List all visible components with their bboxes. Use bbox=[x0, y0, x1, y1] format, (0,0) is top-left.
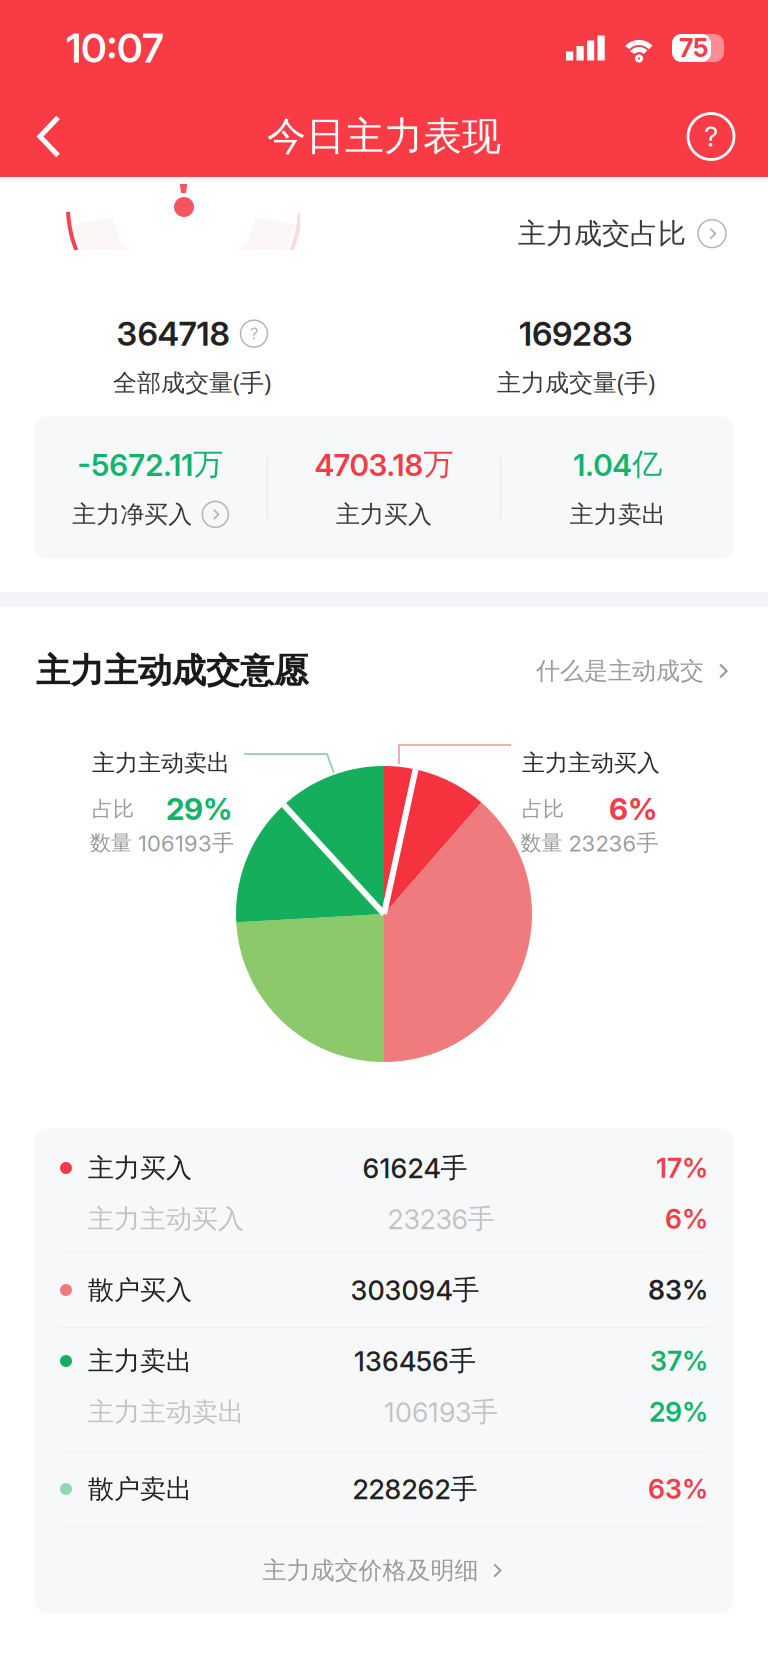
button[interactable]: 什么是主动成交 bbox=[536, 656, 732, 686]
staticText: 主力成交占比 bbox=[518, 216, 686, 251]
staticText: 全部成交量(手) bbox=[113, 366, 271, 398]
staticText: 37% bbox=[650, 1345, 708, 1377]
button[interactable]: Help bbox=[664, 96, 768, 177]
staticText: 17% bbox=[656, 1152, 708, 1184]
staticText: 占比 bbox=[522, 796, 564, 822]
staticText: 136456手 bbox=[354, 1344, 476, 1378]
staticText: ? bbox=[250, 324, 258, 343]
staticText: -5672.11万 bbox=[77, 445, 223, 483]
staticText: 364718 bbox=[116, 314, 229, 354]
staticText: 今日主力表现 bbox=[267, 112, 501, 161]
staticText: 主力卖出 bbox=[88, 1345, 192, 1377]
staticText: 29% bbox=[649, 1396, 708, 1428]
staticText: 1.04亿 bbox=[573, 445, 662, 483]
staticText: 10:07 bbox=[66, 24, 164, 72]
staticText: 106193手 bbox=[384, 1395, 498, 1429]
staticText: 4703.18万 bbox=[314, 445, 453, 483]
staticText: 数量 bbox=[90, 830, 132, 856]
staticText: 散户卖出 bbox=[88, 1473, 192, 1505]
staticText: 主力主动卖出 bbox=[88, 1396, 244, 1428]
staticText: 主力卖出 bbox=[570, 499, 666, 529]
staticText: 主力净买入 bbox=[72, 499, 192, 529]
button[interactable]: 主力成交价格及明细 bbox=[60, 1527, 708, 1614]
staticText: ? bbox=[704, 120, 718, 153]
staticText: 散户买入 bbox=[88, 1274, 192, 1306]
staticText: 23236手 bbox=[387, 1202, 494, 1236]
staticText: 主力主动卖出 bbox=[92, 748, 230, 777]
staticText: 主力成交价格及明细 bbox=[262, 1555, 478, 1586]
button[interactable]: 主力成交占比 bbox=[518, 216, 768, 251]
staticText: 61624手 bbox=[362, 1151, 467, 1185]
staticText: 63% bbox=[648, 1473, 708, 1505]
staticText: 75 bbox=[679, 33, 708, 63]
staticText: 主力主动买入 bbox=[522, 748, 660, 777]
staticText: 主力主动买入 bbox=[88, 1203, 244, 1235]
staticText: 169283 bbox=[519, 314, 633, 354]
staticText: 106193手 bbox=[138, 829, 234, 857]
staticText: 什么是主动成交 bbox=[536, 656, 704, 686]
staticText: 303094手 bbox=[350, 1273, 479, 1307]
staticText: 主力成交量(手) bbox=[497, 366, 655, 398]
staticText: 数量 bbox=[520, 830, 562, 856]
staticText: 23236手 bbox=[568, 829, 658, 857]
staticText: 228262手 bbox=[352, 1472, 477, 1506]
staticText: 主力买入 bbox=[336, 499, 432, 529]
staticText: 占比 bbox=[92, 796, 134, 822]
staticText: 6% bbox=[609, 791, 657, 827]
staticText: 83% bbox=[648, 1274, 708, 1306]
staticText: 6% bbox=[665, 1203, 708, 1235]
staticText: 29% bbox=[166, 791, 232, 827]
button[interactable]: Back bbox=[0, 96, 88, 177]
staticText: 主力主动成交意愿 bbox=[36, 650, 308, 692]
staticText: 主力买入 bbox=[88, 1152, 192, 1184]
